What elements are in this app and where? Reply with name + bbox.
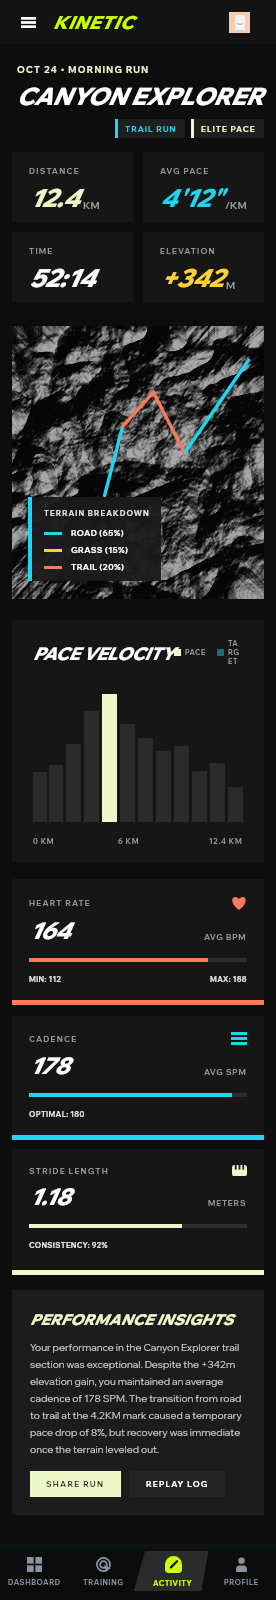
staticText: TRAIL (20%): [71, 562, 125, 572]
button[interactable]: Menu: [17, 11, 39, 33]
button[interactable]: TIME: [12, 232, 133, 302]
staticText: STRIDE LENGTH: [29, 1166, 109, 1176]
staticText: 12.4 KM: [209, 837, 243, 846]
staticText: OPTIMAL: 180: [29, 1110, 85, 1119]
staticText: ELITE PACE: [201, 124, 256, 134]
staticText: PACE VELOCITY: [33, 642, 174, 664]
staticText: AVG BPM: [204, 932, 247, 942]
staticText: TRAINING: [83, 1578, 124, 1587]
staticText: CONSISTENCY: 92%: [29, 1241, 108, 1250]
staticText: TARGET: [228, 639, 243, 666]
button[interactable]: ACTIVITY: [138, 1544, 207, 1600]
button[interactable]: AVG PACE: [143, 152, 264, 222]
staticText: MIN: 112: [29, 975, 62, 984]
staticText: /KM: [225, 199, 247, 212]
staticText: HEART RATE: [29, 898, 91, 908]
staticText: CANYON EXPLORER: [16, 81, 263, 111]
button[interactable]: TRAINING: [69, 1544, 138, 1600]
button[interactable]: SHARE RUN: [30, 1471, 121, 1497]
button[interactable]: TRAIL RUN: [115, 119, 185, 138]
staticText: +342: [160, 262, 223, 294]
staticText: GRASS (15%): [71, 545, 129, 555]
staticText: 6 KM: [118, 837, 140, 846]
staticText: TERRAIN BREAKDOWN: [44, 508, 150, 518]
staticText: ACTIVITY: [153, 1579, 193, 1588]
button[interactable]: STRIDE LENGTH: [12, 1149, 264, 1270]
staticText: TIME: [29, 246, 54, 256]
staticText: MAX: 188: [210, 975, 247, 984]
staticText: 178: [29, 1051, 69, 1080]
staticText: Your performance in the Canyon Explorer …: [30, 1341, 246, 1455]
staticText: SHARE RUN: [46, 1479, 105, 1489]
staticText: 4'12": [160, 182, 222, 214]
button[interactable]: Route map: [12, 326, 264, 599]
staticText: PERFORMANCE INSIGHTS: [30, 1310, 234, 1329]
staticText: 1.18: [29, 1182, 71, 1211]
staticText: ELEVATION: [160, 246, 216, 256]
staticText: TRAIL RUN: [125, 124, 177, 134]
staticText: M: [226, 279, 236, 292]
staticText: DISTANCE: [29, 166, 80, 176]
button[interactable]: CADENCE: [12, 1016, 264, 1135]
button[interactable]: PROFILE: [207, 1544, 276, 1600]
staticText: PACE: [185, 648, 207, 657]
staticText: AVG PACE: [160, 166, 210, 176]
button[interactable]: ELITE PACE: [191, 119, 264, 138]
staticText: KINETIC: [53, 11, 134, 34]
staticText: 12.4: [29, 182, 80, 214]
staticText: METERS: [208, 1198, 247, 1208]
button[interactable]: Profile: [229, 12, 250, 33]
staticText: KM: [83, 199, 100, 212]
staticText: DASHBOARD: [8, 1578, 61, 1587]
button[interactable]: DISTANCE: [12, 152, 133, 222]
staticText: 164: [29, 916, 71, 945]
button[interactable]: DASHBOARD: [0, 1544, 69, 1600]
button[interactable]: REPLAY LOG: [130, 1471, 225, 1497]
staticText: 52:14: [29, 262, 95, 294]
button[interactable]: HEART RATE: [12, 879, 264, 1000]
staticText: REPLAY LOG: [146, 1479, 209, 1489]
staticText: OCT 24 • MORNING RUN: [17, 64, 150, 75]
staticText: AVG SPM: [204, 1067, 247, 1077]
staticText: CADENCE: [29, 1034, 78, 1044]
staticText: 0 KM: [33, 837, 55, 846]
staticText: ROAD (65%): [71, 528, 125, 538]
button[interactable]: PACE VELOCITY: [12, 620, 264, 862]
button[interactable]: ELEVATION: [143, 232, 264, 302]
staticText: PROFILE: [224, 1578, 259, 1587]
